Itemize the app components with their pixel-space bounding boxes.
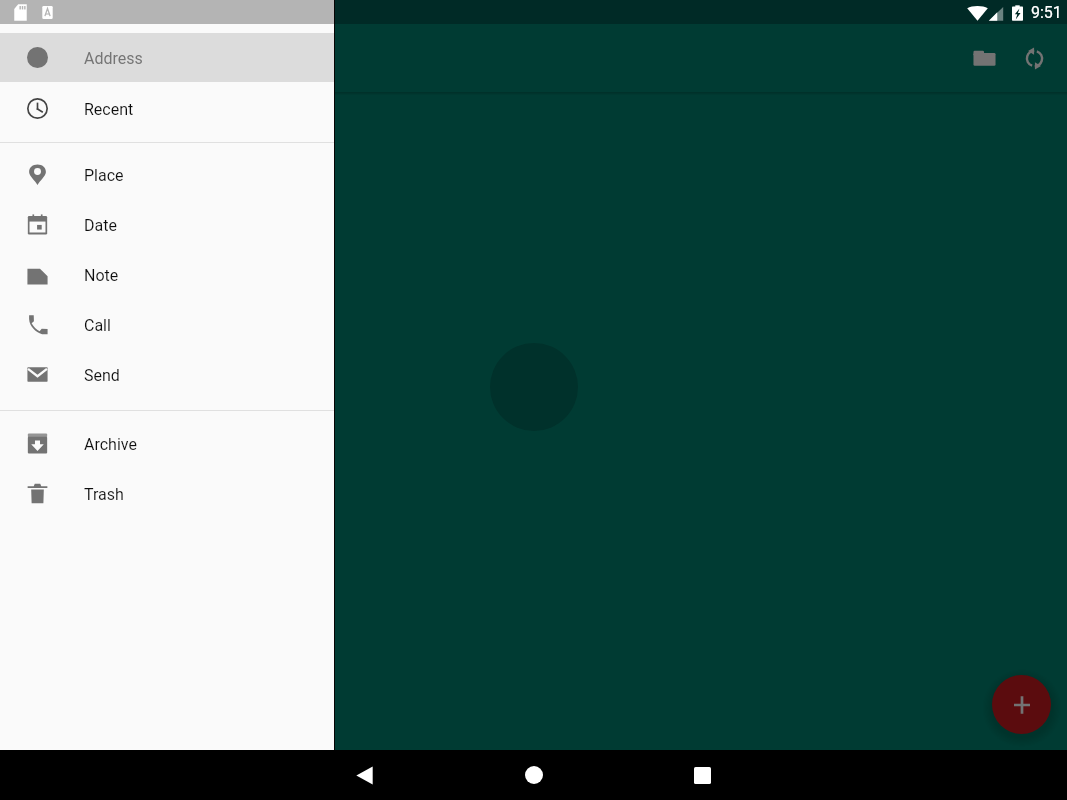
button[interactable]: Address bbox=[0, 33, 334, 82]
staticText: Place bbox=[84, 166, 124, 185]
button[interactable]: Sync bbox=[1010, 34, 1058, 82]
staticText: Address bbox=[84, 49, 143, 68]
button[interactable]: Place bbox=[0, 150, 334, 199]
staticText: Send bbox=[84, 366, 120, 385]
staticText: Date bbox=[84, 216, 117, 235]
button[interactable]: Send bbox=[0, 350, 334, 399]
staticText: Call bbox=[84, 316, 111, 335]
button[interactable]: Call bbox=[0, 300, 334, 349]
staticText: 9:51 bbox=[1031, 3, 1062, 22]
button[interactable]: Note bbox=[0, 250, 334, 299]
staticText: Recent bbox=[84, 100, 134, 119]
button[interactable]: Back bbox=[340, 750, 388, 800]
button[interactable]: Trash bbox=[0, 469, 334, 518]
button[interactable]: Archive bbox=[0, 419, 334, 468]
button[interactable]: Add bbox=[992, 675, 1051, 734]
staticText: Archive bbox=[84, 435, 137, 454]
button[interactable]: Recent bbox=[0, 84, 334, 133]
button[interactable]: Home bbox=[510, 750, 558, 800]
button[interactable]: Date bbox=[0, 200, 334, 249]
staticText: Note bbox=[84, 266, 119, 285]
staticText: Trash bbox=[84, 485, 124, 504]
button[interactable]: Folder bbox=[960, 34, 1008, 82]
button[interactable]: Recents bbox=[678, 750, 726, 800]
